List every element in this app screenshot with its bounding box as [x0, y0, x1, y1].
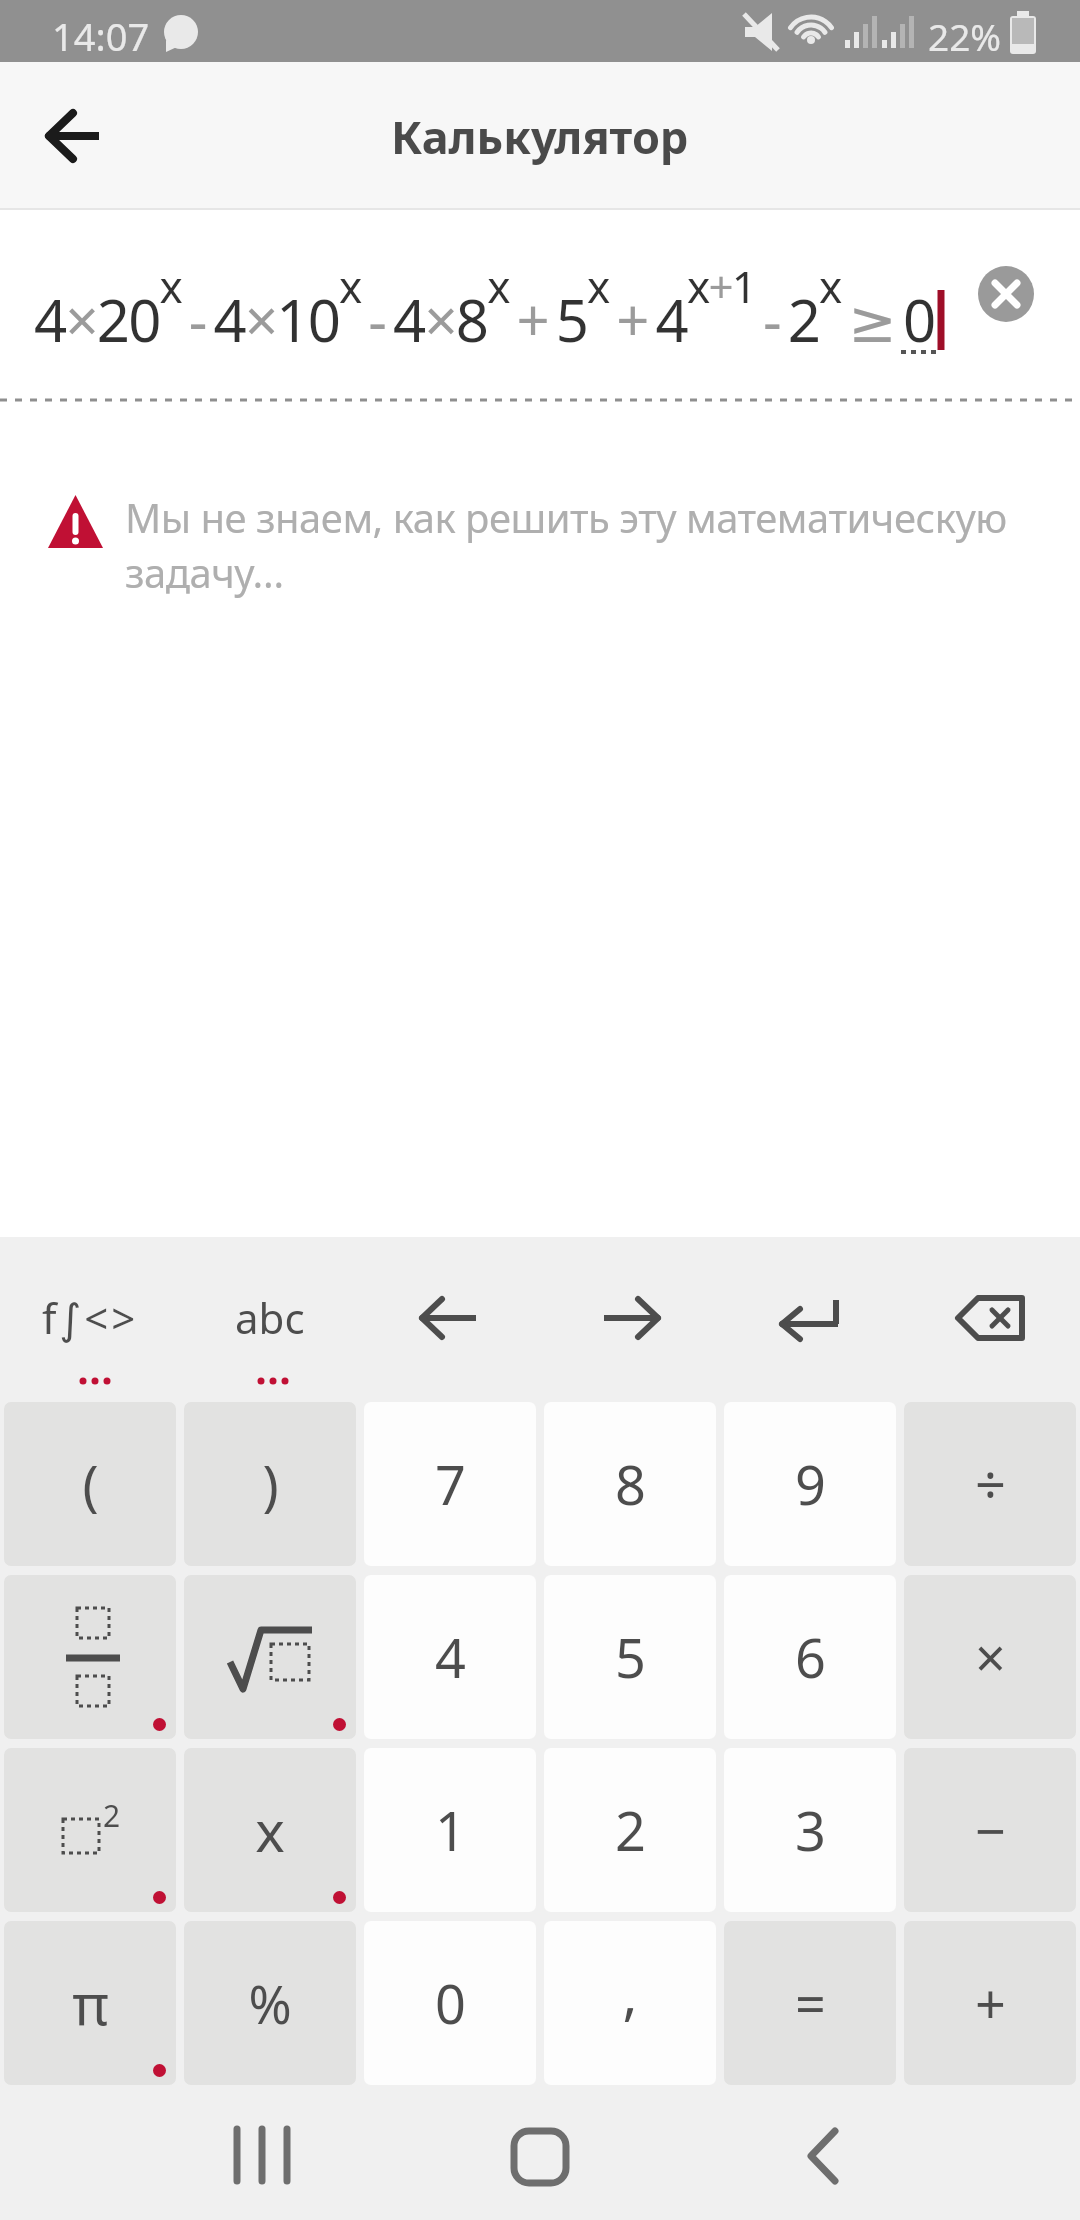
button[interactable]: 2 — [544, 1748, 716, 1912]
button[interactable]: % — [184, 1921, 356, 2085]
button[interactable]: × — [904, 1575, 1076, 1739]
button[interactable]: 7 — [364, 1402, 536, 1566]
button[interactable]: = — [724, 1921, 896, 2085]
button[interactable]: 4 — [364, 1575, 536, 1739]
staticText: × — [975, 1620, 1006, 1694]
button[interactable] — [720, 1237, 900, 1402]
staticText: 2 — [103, 1795, 121, 1836]
staticText: π — [72, 1965, 109, 2041]
button[interactable]: ( — [4, 1402, 176, 1566]
staticText: ) — [262, 1447, 279, 1521]
staticText: % — [248, 1968, 292, 2039]
staticText: 14:07 — [52, 10, 150, 62]
button[interactable]: − — [904, 1748, 1076, 1912]
staticText: 4 — [435, 1620, 466, 1694]
button[interactable] — [184, 1575, 356, 1739]
staticText: − — [975, 1793, 1006, 1867]
button[interactable] — [490, 2107, 590, 2207]
staticText: 8 — [615, 1447, 646, 1521]
button[interactable]: 9 — [724, 1402, 896, 1566]
staticText: , — [622, 1955, 638, 2031]
button[interactable]: 0 — [364, 1921, 536, 2085]
button[interactable]: 3 — [724, 1748, 896, 1912]
staticText: 9 — [795, 1447, 826, 1521]
staticText: 2 — [615, 1793, 646, 1867]
staticText: 6 — [795, 1620, 826, 1694]
staticText: 0 — [435, 1966, 466, 2040]
button[interactable]: x — [184, 1748, 356, 1912]
staticText: abc — [235, 1289, 305, 1346]
staticText: 7 — [435, 1447, 466, 1521]
button[interactable] — [775, 2107, 875, 2207]
staticText: Калькулятор — [391, 106, 689, 167]
button[interactable]: ) — [184, 1402, 356, 1566]
button[interactable]: 6 — [724, 1575, 896, 1739]
button[interactable]: abc — [180, 1237, 360, 1402]
staticText: = — [795, 1966, 826, 2040]
button[interactable]: π — [4, 1921, 176, 2085]
staticText: x — [255, 1792, 285, 1868]
staticText: 1 — [435, 1793, 466, 1867]
button[interactable] — [978, 266, 1034, 322]
button[interactable]: f∫<> — [0, 1237, 180, 1402]
staticText: Мы не знаем, как решить эту математическ… — [125, 490, 1007, 600]
button[interactable]: 1 — [364, 1748, 536, 1912]
staticText: 4×20x - 4×10x - 4×8x + 5x + 4x+1 - 2x ≥ … — [34, 256, 935, 359]
button[interactable]: ÷ — [904, 1402, 1076, 1566]
staticText: ( — [82, 1447, 99, 1521]
staticText: 3 — [795, 1793, 826, 1867]
staticText: 5 — [615, 1620, 646, 1694]
staticText: 22% — [928, 11, 1002, 61]
button[interactable] — [25, 86, 125, 186]
button[interactable] — [4, 1575, 176, 1739]
button[interactable] — [212, 2107, 312, 2207]
button[interactable]: 8 — [544, 1402, 716, 1566]
staticText: ÷ — [975, 1447, 1006, 1521]
button[interactable] — [360, 1237, 540, 1402]
button[interactable]: 2 — [4, 1748, 176, 1912]
staticText: f∫<> — [42, 1289, 139, 1346]
button[interactable]: , — [544, 1921, 716, 2085]
button[interactable] — [900, 1237, 1080, 1402]
button[interactable]: + — [904, 1921, 1076, 2085]
button[interactable] — [540, 1237, 720, 1402]
staticText: + — [975, 1966, 1006, 2040]
button[interactable]: 5 — [544, 1575, 716, 1739]
